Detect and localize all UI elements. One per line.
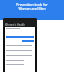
staticText: Prevention tools for Women and Men: [16, 2, 48, 11]
staticText: Women's Health: [5, 23, 25, 27]
